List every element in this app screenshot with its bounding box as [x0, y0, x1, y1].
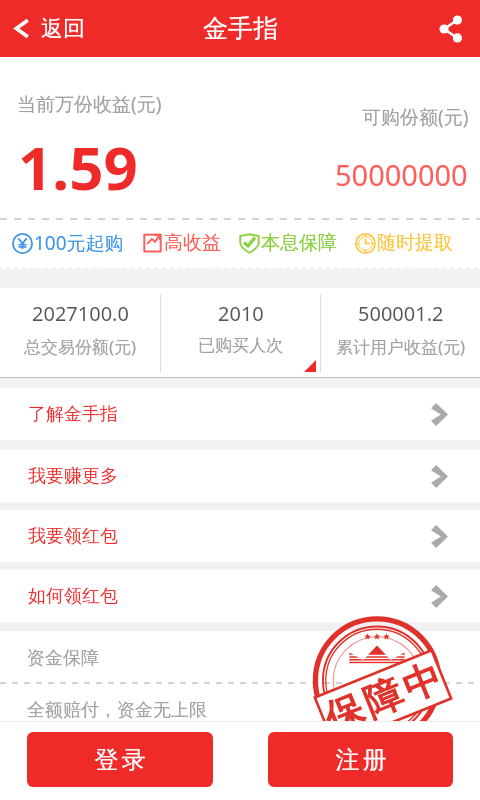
- staticText: 登录: [93, 745, 147, 775]
- button[interactable]: 我要领红包: [0, 510, 480, 562]
- staticText: 已购买人次: [198, 335, 283, 356]
- staticText: 总交易份额(元): [24, 335, 137, 358]
- staticText: 保障中: [316, 652, 450, 744]
- staticText: 金手指: [203, 13, 278, 44]
- button[interactable]: 注册: [268, 732, 453, 787]
- staticText: 高收益: [164, 231, 221, 255]
- staticText: 返回: [41, 15, 85, 43]
- staticText: 当前万份收益(元): [17, 91, 162, 117]
- staticText: 我要领红包: [28, 525, 118, 548]
- staticText: 我要赚更多: [28, 465, 118, 488]
- staticText: 2010: [218, 300, 264, 327]
- button[interactable]: 返回: [0, 0, 101, 57]
- staticText: 2027100.0: [32, 300, 129, 327]
- staticText: 如何领红包: [28, 585, 118, 608]
- staticText: 注册: [334, 745, 388, 775]
- staticText: 全额赔付，资金无上限: [27, 699, 207, 722]
- staticText: 了解金手指: [28, 403, 118, 426]
- staticText: 可购份额(元): [362, 104, 469, 130]
- button[interactable]: 我要赚更多: [0, 450, 480, 502]
- staticText: 随时提取: [377, 231, 453, 255]
- button[interactable]: 了解金手指: [0, 388, 480, 440]
- staticText: 累计用户收益(元): [336, 335, 466, 358]
- staticText: 本息保障: [261, 231, 337, 255]
- button[interactable]: 登录: [27, 732, 213, 787]
- staticText: 500001.2: [358, 300, 444, 327]
- staticText: 100元起购: [34, 230, 124, 256]
- staticText: 资金保障: [27, 647, 99, 670]
- button[interactable]: 如何领红包: [0, 570, 480, 622]
- staticText: 1.59: [18, 126, 138, 208]
- button[interactable]: Share: [421, 0, 480, 57]
- staticText: 50000000: [335, 155, 468, 194]
